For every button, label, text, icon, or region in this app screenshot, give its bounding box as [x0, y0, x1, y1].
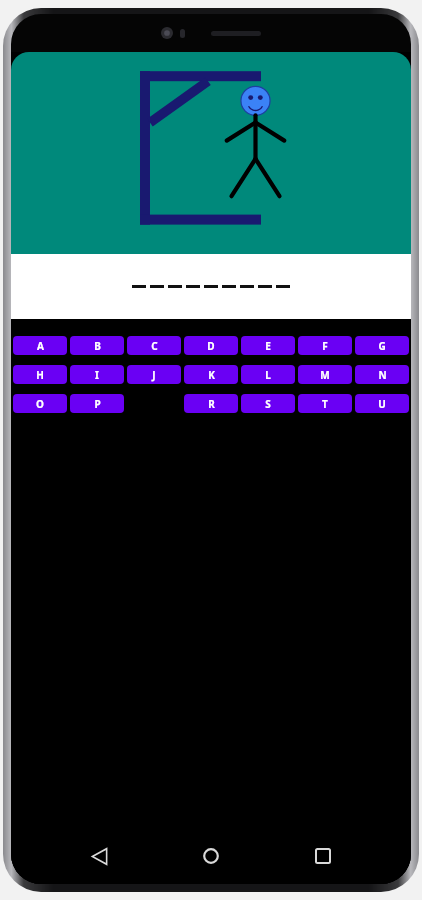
button[interactable]: S: [241, 394, 295, 413]
button[interactable]: P: [70, 394, 124, 413]
staticText: S: [265, 397, 271, 411]
button[interactable]: Recent apps: [299, 832, 347, 880]
button[interactable]: Home: [187, 832, 235, 880]
button[interactable]: U: [355, 394, 409, 413]
staticText: L: [265, 368, 271, 382]
staticText: D: [207, 339, 215, 353]
staticText: E: [265, 339, 271, 353]
button[interactable]: R: [184, 394, 238, 413]
staticText: A: [37, 339, 44, 353]
button[interactable]: L: [241, 365, 295, 384]
button[interactable]: F: [298, 336, 352, 355]
button[interactable]: A: [13, 336, 67, 355]
staticText: G: [378, 339, 386, 353]
staticText: I: [95, 368, 99, 382]
staticText: H: [36, 368, 44, 382]
button[interactable]: D: [184, 336, 238, 355]
button[interactable]: K: [184, 365, 238, 384]
button[interactable]: T: [298, 394, 352, 413]
staticText: F: [322, 339, 328, 353]
button[interactable]: G: [355, 336, 409, 355]
staticText: R: [208, 397, 215, 411]
button[interactable]: I: [70, 365, 124, 384]
staticText: P: [94, 397, 101, 411]
button[interactable]: N: [355, 365, 409, 384]
button[interactable]: C: [127, 336, 181, 355]
button[interactable]: J: [127, 365, 181, 384]
staticText: N: [378, 368, 387, 382]
staticText: C: [151, 339, 158, 353]
staticText: K: [208, 368, 215, 382]
staticText: B: [94, 339, 101, 353]
button[interactable]: H: [13, 365, 67, 384]
button[interactable]: Back: [75, 832, 123, 880]
staticText: J: [152, 368, 156, 382]
button[interactable]: E: [241, 336, 295, 355]
button[interactable]: B: [70, 336, 124, 355]
staticText: U: [378, 397, 386, 411]
button[interactable]: M: [298, 365, 352, 384]
staticText: T: [322, 397, 328, 411]
button[interactable]: O: [13, 394, 67, 413]
staticText: M: [320, 368, 330, 382]
staticText: O: [36, 397, 44, 411]
